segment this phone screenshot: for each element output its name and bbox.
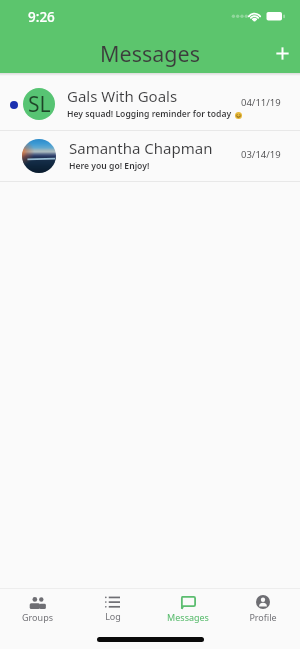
staticText: SL — [28, 90, 51, 119]
staticText: Samantha Chapman — [69, 138, 213, 158]
staticText: 9:26 — [28, 8, 55, 26]
button[interactable]: New message — [264, 35, 300, 71]
staticText: Groups — [22, 611, 53, 623]
button[interactable]: Messages — [150, 589, 225, 629]
staticText: Gals With Goals — [67, 86, 178, 106]
button[interactable]: Log — [75, 589, 150, 629]
staticText: Log — [105, 610, 121, 622]
staticText: Here you go! Enjoy! — [69, 160, 150, 172]
button[interactable]: Groups — [0, 589, 75, 629]
staticText: 04/11/19 — [241, 96, 281, 109]
staticText: Messages — [167, 611, 209, 623]
button[interactable]: SL — [0, 79, 300, 124]
staticText: Messages — [100, 39, 200, 68]
button[interactable]: Samantha Chapman — [0, 131, 300, 176]
button[interactable]: Profile — [225, 589, 300, 629]
staticText: 03/14/19 — [241, 148, 281, 161]
staticText: Hey squad! Logging reminder for today — [67, 108, 232, 120]
staticText: Profile — [249, 611, 277, 623]
